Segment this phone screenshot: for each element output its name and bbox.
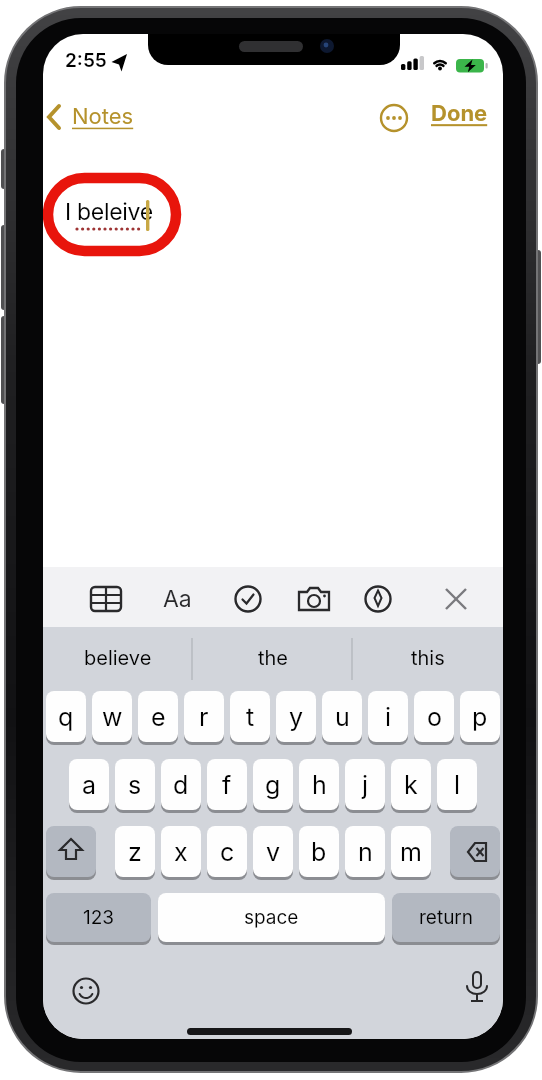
staticText: Aa [163,585,192,613]
button[interactable] [233,584,263,614]
button[interactable] [298,585,330,613]
button[interactable]: p [460,691,500,742]
button[interactable]: 123 [46,893,151,942]
button[interactable]: l [437,759,477,810]
button[interactable]: v [253,826,293,877]
button[interactable]: d [161,759,201,810]
button[interactable]: e [138,691,178,742]
staticText: return [419,906,474,929]
staticText: n [358,837,373,867]
staticText: believe [84,646,152,670]
button[interactable]: b [299,826,339,877]
staticText: x [174,837,188,867]
button[interactable]: g [253,759,293,810]
button[interactable]: return [392,893,500,942]
button[interactable]: r [184,691,224,742]
button[interactable]: n [345,826,385,877]
button[interactable]: believe [53,629,183,687]
button[interactable] [91,584,121,614]
button[interactable]: j [345,759,385,810]
staticText: this [411,646,445,670]
staticText: c [220,837,235,867]
button[interactable] [363,584,393,614]
staticText: Done [431,100,488,127]
button[interactable] [443,586,469,612]
staticText: Notes [72,103,134,130]
staticText: y [289,702,304,732]
staticText: the [258,646,289,670]
button[interactable]: y [276,691,316,742]
staticText: d [173,770,189,800]
staticText: b [311,837,327,867]
staticText: e [151,702,166,732]
button[interactable]: w [92,691,132,742]
staticText: k [404,770,418,800]
staticText: space [244,906,299,929]
staticText: s [128,770,142,800]
button[interactable]: this [363,629,493,687]
button[interactable] [461,970,493,1010]
staticText: o [427,702,442,732]
button[interactable] [450,826,500,877]
staticText: f [222,770,232,800]
staticText: z [128,837,142,867]
button[interactable]: m [391,826,431,877]
button[interactable]: a [69,759,109,810]
button[interactable] [46,826,96,877]
staticText: 123 [83,906,115,929]
button[interactable]: Done [431,100,491,134]
staticText: j [362,770,369,800]
staticText: m [400,837,422,867]
staticText: I beleive [65,198,153,226]
button[interactable]: f [207,759,247,810]
button[interactable]: c [207,826,247,877]
button[interactable]: Notes [43,96,163,138]
button[interactable]: k [391,759,431,810]
staticText: v [266,837,281,867]
button[interactable] [380,104,408,132]
button[interactable]: h [299,759,339,810]
button[interactable]: o [414,691,454,742]
button[interactable] [69,974,103,1008]
staticText: p [472,702,488,732]
staticText: q [58,702,74,732]
button[interactable]: Aa [161,584,193,614]
button[interactable]: the [208,629,338,687]
staticText: w [102,702,123,732]
button[interactable]: space [158,893,385,942]
staticText: u [335,702,350,732]
staticText: r [199,702,209,732]
button[interactable]: z [115,826,155,877]
button[interactable]: u [322,691,362,742]
button[interactable]: x [161,826,201,877]
staticText: 2:55 [65,49,107,72]
button[interactable]: t [230,691,270,742]
staticText: l [454,770,461,800]
staticText: h [312,770,327,800]
staticText: g [265,770,281,800]
button[interactable]: q [46,691,86,742]
staticText: i [385,702,392,732]
staticText: a [82,770,97,800]
button[interactable]: s [115,759,155,810]
button[interactable]: i [368,691,408,742]
staticText: t [246,702,255,732]
